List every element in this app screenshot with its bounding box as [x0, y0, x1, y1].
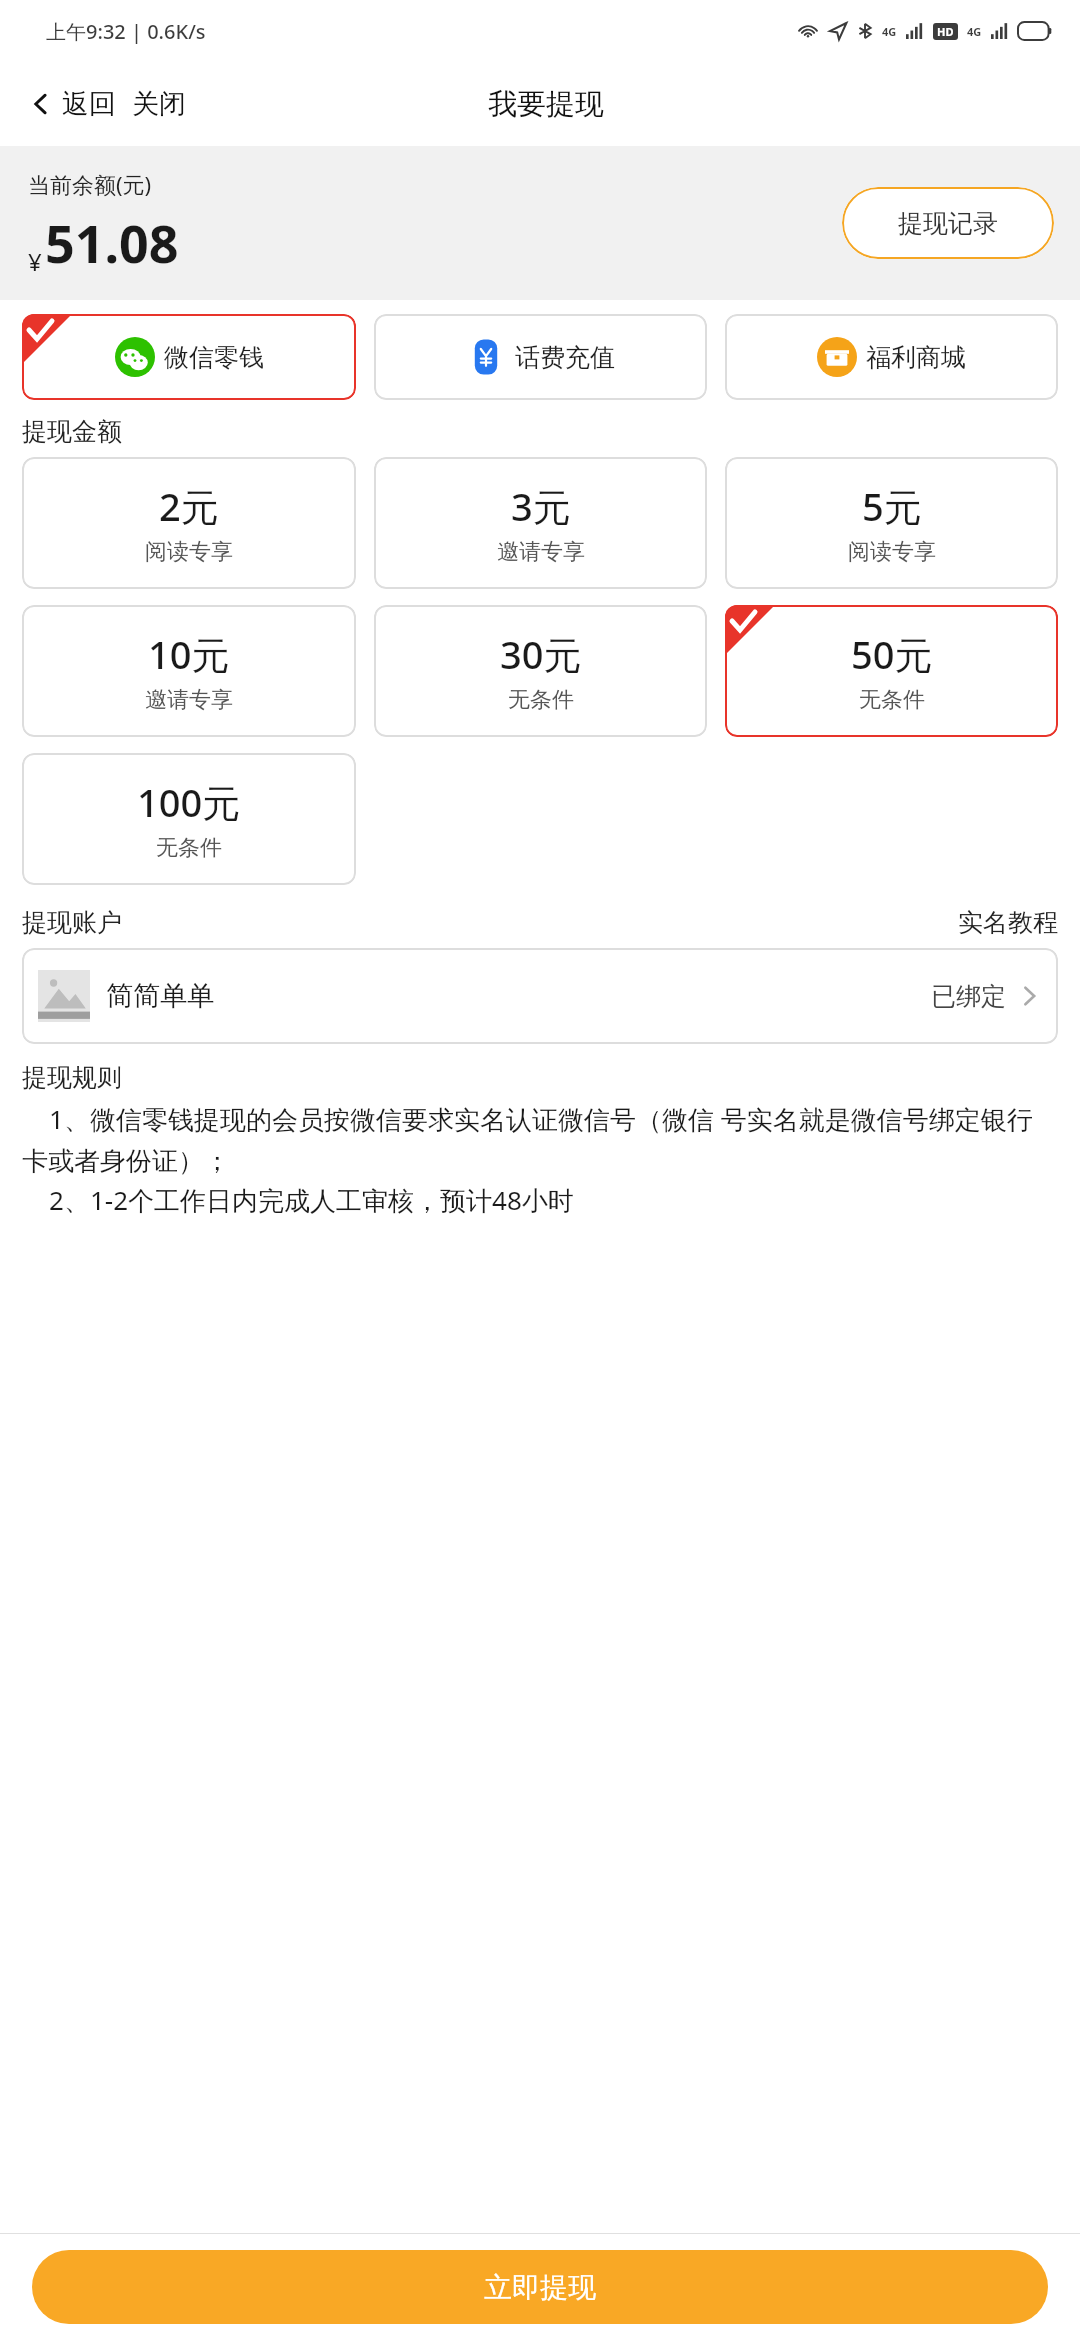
staticText: 4G — [967, 24, 982, 39]
staticText: 我要提现 — [488, 86, 604, 123]
staticText: 提现账户 — [22, 907, 122, 938]
staticText: 返回 — [62, 87, 116, 121]
other: Back — [28, 91, 54, 117]
staticText: 10元 — [148, 628, 230, 680]
staticText: 实名教程 — [958, 907, 1058, 938]
staticText: 阅读专享 — [848, 538, 936, 566]
staticText: 无条件 — [508, 686, 574, 714]
staticText: HD — [937, 24, 954, 39]
staticText: 当前余额(元) — [28, 169, 152, 199]
staticText: 立即提现 — [484, 2270, 596, 2305]
button[interactable]: 提现记录 — [842, 187, 1054, 259]
staticText: 2元 — [159, 480, 219, 532]
staticText: 阅读专享 — [145, 538, 233, 566]
button[interactable]: 福利商城 — [725, 314, 1058, 400]
staticText: 关闭 — [132, 87, 186, 121]
staticText: 提现记录 — [898, 208, 998, 239]
staticText: 提现规则 — [22, 1062, 122, 1093]
staticText: 邀请专享 — [497, 538, 585, 566]
staticText: 2、1-2个工作日内完成人工审核，预计48小时 — [22, 1182, 574, 1218]
button[interactable]: 关闭 — [124, 79, 194, 129]
staticText: 无条件 — [156, 834, 222, 862]
staticText: 50元 — [851, 628, 933, 680]
button[interactable]: 30元 — [374, 605, 707, 737]
staticText: 100元 — [137, 776, 241, 828]
staticText: 3元 — [511, 480, 571, 532]
staticText: 邀请专享 — [145, 686, 233, 714]
button[interactable]: 话费充值 — [374, 314, 707, 400]
staticText: 4G — [882, 24, 897, 39]
staticText: 福利商城 — [866, 342, 966, 373]
button[interactable]: 10元 — [22, 605, 356, 737]
button[interactable]: 立即提现 — [32, 2250, 1048, 2324]
staticText: 简简单单 — [106, 979, 214, 1013]
button[interactable]: Back — [22, 81, 122, 127]
button[interactable]: 简简单单 — [22, 948, 1058, 1044]
staticText: 提现金额 — [22, 416, 122, 447]
button[interactable]: 实名教程 — [958, 907, 1058, 938]
staticText: 1、微信零钱提现的会员按微信要求实名认证微信号（微信 号实名就是微信号绑定银行卡… — [22, 1101, 1058, 1178]
staticText: 已绑定 — [931, 981, 1006, 1012]
staticText: 无条件 — [859, 686, 925, 714]
staticText: 话费充值 — [515, 342, 615, 373]
staticText: ¥ — [28, 245, 42, 278]
button[interactable]: 3元 — [374, 457, 707, 589]
staticText: 51.08 — [45, 207, 179, 278]
button[interactable]: 2元 — [22, 457, 356, 589]
staticText: 微信零钱 — [164, 342, 264, 373]
button[interactable]: 100元 — [22, 753, 356, 885]
staticText: 30元 — [500, 628, 582, 680]
staticText: 5元 — [862, 480, 922, 532]
button[interactable]: 50元 — [725, 605, 1058, 737]
button[interactable]: 5元 — [725, 457, 1058, 589]
button[interactable]: 微信零钱 — [22, 314, 356, 400]
staticText: 上午9:32 | 0.6K/s — [46, 18, 206, 45]
